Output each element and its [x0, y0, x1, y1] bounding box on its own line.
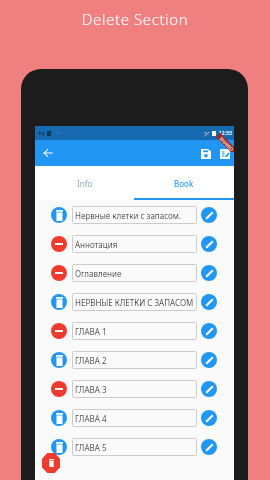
staticText: 12:33: [219, 130, 232, 137]
button[interactable]: Edit: [201, 236, 217, 252]
staticText: Book: [174, 178, 194, 189]
button[interactable]: Book: [134, 166, 234, 200]
staticText: Нервные клетки с запасом. Нови: [75, 210, 195, 221]
staticText: ГЛАВА 1: [75, 326, 107, 337]
staticText: Info: [77, 178, 93, 189]
button[interactable]: Delete: [42, 453, 60, 473]
button[interactable]: ГЛАВА 3: [35, 374, 234, 403]
button[interactable]: Save: [196, 144, 215, 163]
staticText: ГЛАВА 2: [75, 355, 107, 366]
button[interactable]: Edit: [201, 294, 217, 310]
staticText: ГЛАВА 3: [75, 384, 107, 395]
button[interactable]: ГЛАВА 2: [35, 345, 234, 374]
staticText: ГЛАВА 4: [75, 413, 107, 424]
button[interactable]: Нервные клетки с запасом. Нови: [35, 200, 234, 229]
staticText: SHARED: [218, 135, 234, 152]
button[interactable]: Edit document: [215, 144, 234, 163]
button[interactable]: ГЛАВА 5: [35, 432, 234, 461]
button[interactable]: Аннотация: [35, 229, 234, 258]
button[interactable]: НЕРВНЫЕ КЛЕТКИ С ЗАПАСОМ: [35, 287, 234, 316]
button[interactable]: Edit: [201, 265, 217, 281]
button[interactable]: Edit: [201, 352, 217, 368]
button[interactable]: Edit: [201, 207, 217, 223]
staticText: Оглавление: [75, 268, 122, 279]
staticText: ГЛАВА 5: [75, 442, 107, 453]
button[interactable]: ГЛАВА 1: [35, 316, 234, 345]
button[interactable]: Edit: [201, 410, 217, 426]
button[interactable]: Оглавление: [35, 258, 234, 287]
staticText: Delete Section: [0, 9, 270, 29]
button[interactable]: Edit: [201, 439, 217, 455]
staticText: Аннотация: [75, 239, 118, 250]
button[interactable]: Back: [37, 142, 59, 164]
staticText: НЕРВНЫЕ КЛЕТКИ С ЗАПАСОМ: [75, 297, 194, 308]
button[interactable]: ГЛАВА 4: [35, 403, 234, 432]
button[interactable]: Info: [35, 166, 134, 200]
button[interactable]: Edit: [201, 381, 217, 397]
button[interactable]: Edit: [201, 323, 217, 339]
